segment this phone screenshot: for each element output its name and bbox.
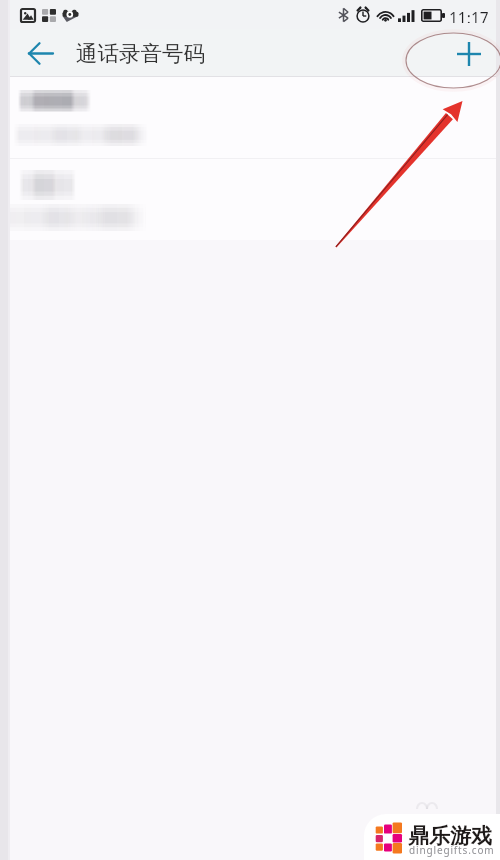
- staticText: 鼎乐游戏: [408, 823, 492, 849]
- button[interactable]: Add: [438, 30, 500, 77]
- button[interactable]: Back: [0, 30, 72, 77]
- staticText: dinglegifts.com: [409, 843, 495, 857]
- button[interactable]: [0, 159, 500, 240]
- staticText: 通话录音号码: [76, 40, 205, 67]
- button[interactable]: [0, 77, 500, 158]
- staticText: 11:17: [449, 7, 489, 23]
